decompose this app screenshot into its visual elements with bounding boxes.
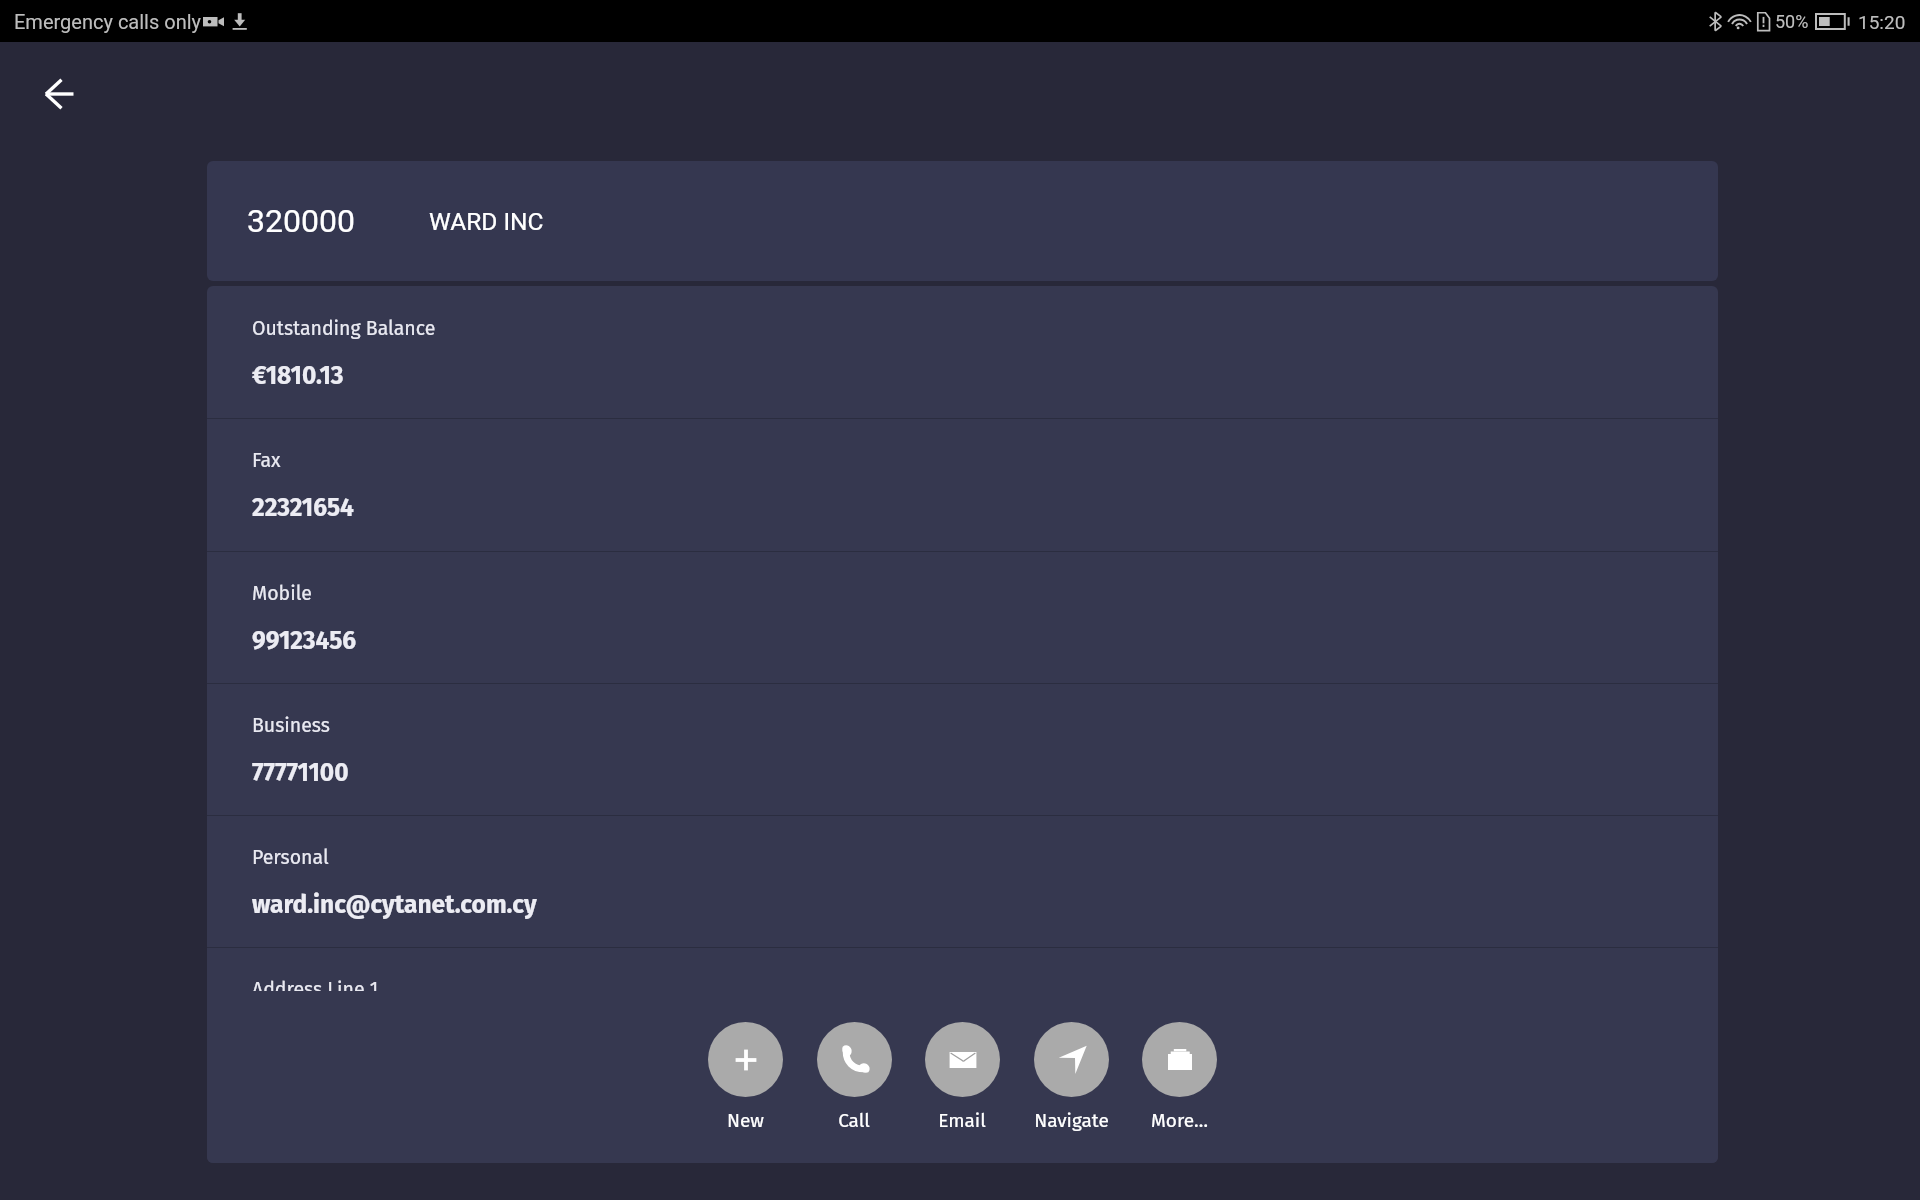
button[interactable]: Email: [908, 1008, 1016, 1138]
staticText: Navigate: [1034, 1109, 1109, 1132]
staticText: Address Line 1: [252, 978, 379, 1001]
button[interactable]: Back: [30, 64, 90, 124]
staticText: ward.inc@cytanet.com.cy: [252, 890, 537, 919]
button[interactable]: Outstanding Balance: [207, 286, 1718, 418]
button[interactable]: Mobile: [207, 551, 1718, 683]
staticText: €1810.13: [252, 361, 344, 390]
staticText: 22321654: [252, 493, 354, 522]
staticText: Fax: [252, 449, 281, 472]
staticText: WARD INC: [429, 207, 544, 236]
button[interactable]: More…: [1125, 1008, 1233, 1138]
staticText: 15:20: [1858, 11, 1906, 33]
button[interactable]: New: [691, 1008, 799, 1138]
staticText: Call: [838, 1109, 870, 1132]
staticText: Outstanding Balance: [252, 317, 436, 340]
button[interactable]: Address Line 1: [207, 947, 1718, 1079]
staticText: New: [727, 1109, 764, 1132]
staticText: Business: [252, 714, 330, 737]
button[interactable]: 320000: [207, 161, 1718, 281]
staticText: Email: [938, 1109, 986, 1132]
staticText: 77771100: [252, 758, 349, 787]
staticText: 99123456: [252, 626, 357, 655]
button[interactable]: Fax: [207, 418, 1718, 550]
staticText: 50%: [1775, 11, 1809, 32]
button[interactable]: Call: [800, 1008, 908, 1138]
staticText: More…: [1151, 1109, 1208, 1132]
staticText: 320000: [247, 202, 355, 240]
button[interactable]: Navigate: [1017, 1008, 1125, 1138]
button[interactable]: Personal: [207, 815, 1718, 947]
staticText: Personal: [252, 846, 329, 869]
staticText: Emergency calls only: [14, 10, 202, 33]
staticText: Mobile: [252, 582, 312, 605]
button[interactable]: Business: [207, 683, 1718, 815]
